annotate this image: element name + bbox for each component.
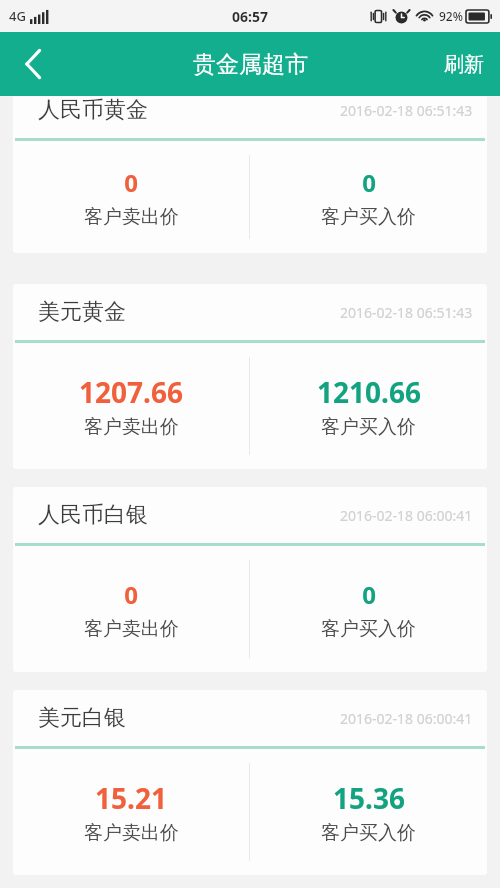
staticText: 客户卖出价 [84,617,179,641]
staticText: 客户买入价 [321,205,416,229]
staticText: 客户买入价 [321,617,416,641]
staticText: 15.36 [333,779,405,817]
staticText: 客户买入价 [321,821,416,845]
staticText: 15.21 [95,779,167,817]
staticText: 贵金属超市 [193,50,308,79]
staticText: 美元黄金 [38,298,126,326]
staticText: 0 [124,578,138,611]
staticText: 客户卖出价 [84,821,179,845]
staticText: 4G [9,7,26,25]
button[interactable]: 美元白银 [13,690,487,875]
staticText: 0 [124,166,138,199]
staticText: 刷新 [444,52,484,77]
button[interactable]: 刷新 [428,32,500,96]
staticText: 客户买入价 [321,415,416,439]
staticText: 2016-02-18 06:51:43 [340,303,473,322]
staticText: 1207.66 [79,373,183,411]
staticText: 人民币黄金 [38,96,148,124]
staticText: 1210.66 [317,373,421,411]
staticText: 人民币白银 [38,501,148,529]
button[interactable]: Back [0,32,66,96]
staticText: 92% [439,8,463,24]
button[interactable]: 人民币白银 [13,487,487,672]
staticText: 2016-02-18 06:51:43 [340,101,473,120]
staticText: 美元白银 [38,704,126,732]
staticText: 2016-02-18 06:00:41 [340,709,473,728]
button[interactable]: 人民币黄金 [13,96,487,253]
button[interactable]: 美元黄金 [13,284,487,469]
staticText: 2016-02-18 06:00:41 [340,506,473,525]
staticText: 0 [362,166,376,199]
staticText: 客户卖出价 [84,415,179,439]
staticText: 客户卖出价 [84,205,179,229]
staticText: 0 [362,578,376,611]
staticText: 06:57 [232,7,268,26]
